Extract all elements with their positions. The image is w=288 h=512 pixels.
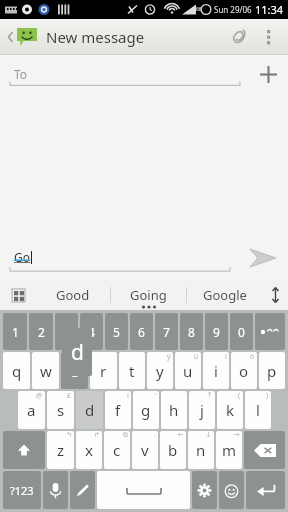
button[interactable]: Going [111,280,186,310]
button[interactable]: 9 [205,313,228,350]
staticText: 4 [88,324,95,340]
staticText: x [85,440,93,460]
staticText: ↰ [66,431,72,439]
staticText: · [154,431,156,441]
staticText: 5 [113,324,120,340]
staticText: d [71,338,84,367]
staticText: ↓ [206,431,212,439]
staticText: Sun 29/06 [214,4,252,15]
button[interactable]: y [147,352,173,389]
button[interactable]: Space [97,471,190,509]
staticText: e [70,361,79,381]
button[interactable]: x [76,431,102,469]
staticText: k [226,400,235,420]
button[interactable]: m [216,431,242,469]
staticText: l [256,400,260,420]
staticText: v [141,440,149,460]
button[interactable]: i [203,352,229,389]
button[interactable]: ?123 [3,471,41,509]
button[interactable]: s [47,391,74,429]
button[interactable]: b [160,431,186,469]
button[interactable]: g [133,391,159,429]
staticText: ý [167,352,171,362]
button[interactable]: n [188,431,214,469]
staticText: 2 [38,324,45,340]
button[interactable]: Enter [246,471,285,509]
staticText: ò [250,352,255,362]
button[interactable]: f [105,391,131,429]
button[interactable]: Shift [3,431,45,469]
button[interactable]: z [47,431,74,469]
button[interactable]: t [119,352,145,389]
button[interactable]: Send [238,236,288,280]
button[interactable]: q [3,352,30,389]
staticText: i [214,361,218,381]
button[interactable]: h [161,391,187,429]
staticText: 6 [138,324,145,340]
staticText: ?123 [10,483,34,498]
staticText: w [40,361,52,381]
staticText: n [196,440,206,460]
button[interactable]: 8 [180,313,203,350]
staticText: ù [194,352,199,362]
staticText: t [129,361,135,381]
button[interactable]: r [90,352,117,389]
staticText: a [27,400,36,420]
button[interactable]: 7 [155,313,178,350]
button[interactable]: k [217,391,243,429]
staticText: ← [178,431,184,439]
button[interactable]: 2 [29,313,53,350]
staticText: ( [238,391,241,401]
button[interactable]: e [61,352,88,389]
button[interactable]: 4 [80,313,103,350]
button[interactable]: d [76,391,103,429]
staticText: o [239,361,249,381]
button[interactable]: l [245,391,271,429]
button[interactable]: p [259,352,285,389]
staticText: Good [56,286,90,304]
staticText: Going [130,286,167,304]
button[interactable]: Backspace [244,431,285,469]
button[interactable]: 3 [55,313,78,350]
button[interactable]: 0 [230,313,253,350]
staticText: u [183,361,193,381]
button[interactable]: Good [36,280,110,310]
button[interactable]: Handwriting [70,471,95,509]
button[interactable]: More options [256,20,282,54]
staticText: g [141,400,151,420]
staticText: New message [46,27,145,47]
button[interactable]: Voice input [43,471,68,509]
staticText: c [113,440,121,460]
button[interactable]: Attach [222,20,256,54]
staticText: m [222,440,237,460]
staticText: s [57,400,65,420]
button[interactable]: To [10,55,240,93]
staticText: 7 [163,324,170,340]
staticText: q [12,361,22,381]
button[interactable]: Keyboard options [0,280,36,310]
button[interactable]: Add recipient [248,55,288,93]
button[interactable]: w [32,352,59,389]
staticText: Google [203,286,247,304]
button[interactable]: 6 [130,313,153,350]
button[interactable]: u [175,352,201,389]
staticText: h [169,400,179,420]
button[interactable]: Settings [192,471,217,509]
button[interactable]: Expand suggestions [262,280,288,310]
button[interactable]: Back [4,24,40,50]
staticText: ⧉ [123,431,128,438]
button[interactable]: v [132,431,158,469]
staticText: → [234,431,240,439]
button[interactable]: Google [187,280,262,310]
button[interactable]: 5 [105,313,128,350]
button[interactable]: Emoji [219,471,244,509]
button[interactable]: j [189,391,215,429]
button[interactable]: 1 [3,313,27,350]
button[interactable]: o [231,352,257,389]
staticText: z [57,440,65,460]
button[interactable]: Go [10,236,238,280]
button[interactable]: a [18,391,45,429]
button[interactable]: c [104,431,130,469]
staticText: ì [225,352,227,362]
button[interactable] [255,313,285,350]
